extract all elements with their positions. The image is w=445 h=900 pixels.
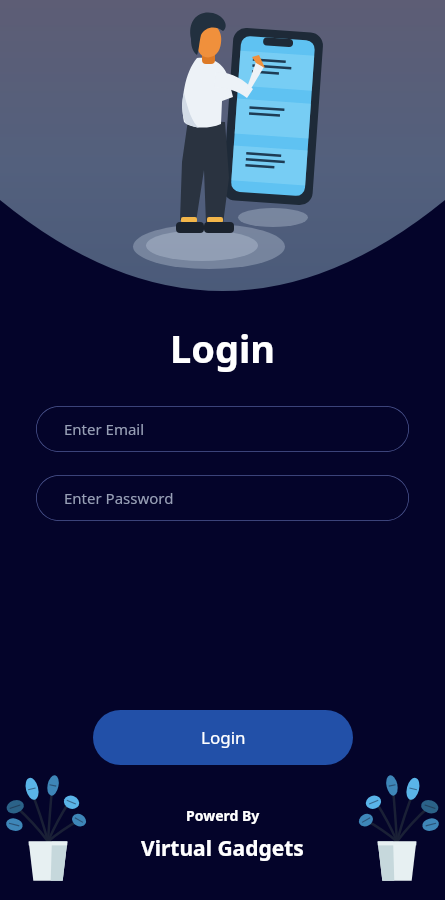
button[interactable]: Enter Password — [36, 475, 409, 521]
staticText: Login — [170, 322, 276, 374]
staticText: Virtual Gadgets — [141, 834, 304, 863]
other: Decorative plant — [6, 772, 90, 884]
staticText: Powerd By — [186, 806, 260, 825]
staticText: Enter Email — [64, 419, 145, 439]
staticText: Login — [201, 726, 246, 749]
button[interactable]: Enter Email — [36, 406, 409, 452]
button[interactable]: Login — [93, 710, 353, 765]
other: Decorative plant — [355, 772, 439, 884]
staticText: Enter Password — [64, 488, 174, 508]
